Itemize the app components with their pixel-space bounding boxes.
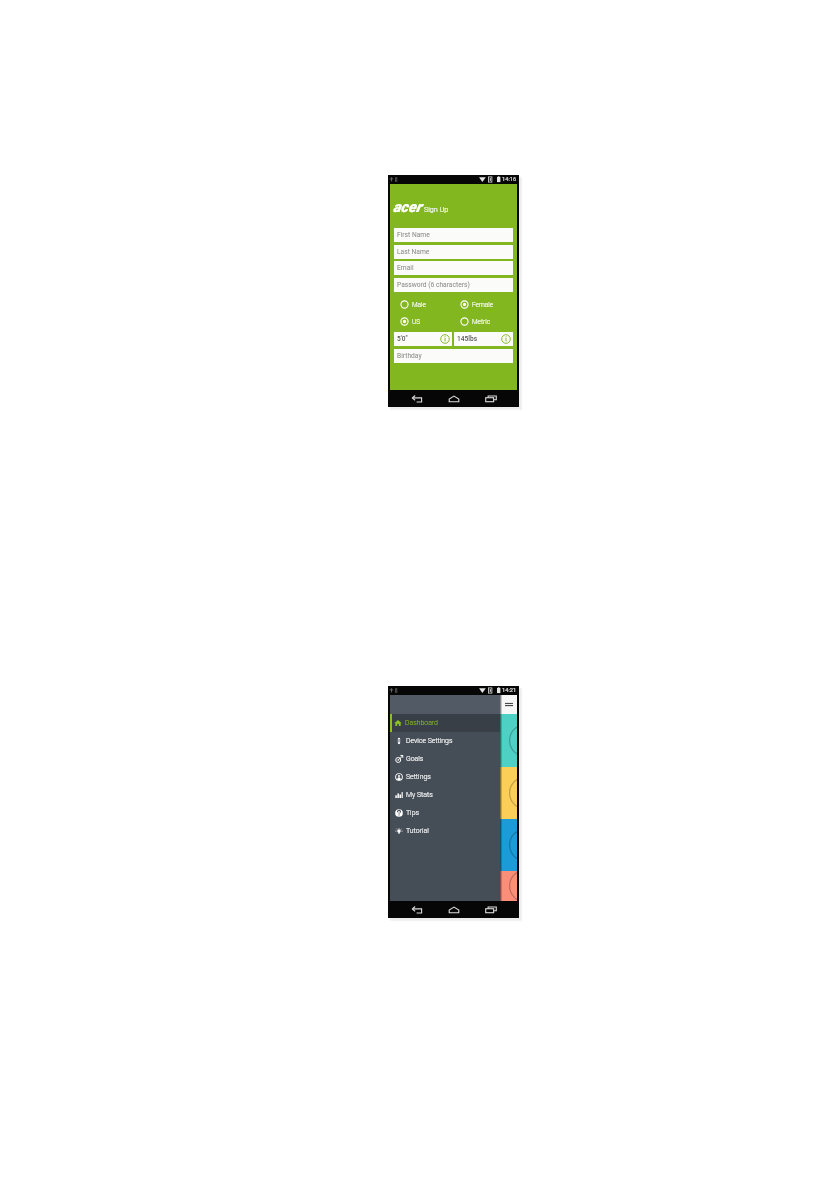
staticText: Birthday — [397, 352, 422, 360]
staticText: 5'0" — [397, 335, 408, 343]
button[interactable]: 5'0" — [394, 332, 452, 346]
staticText: Male — [412, 301, 426, 309]
button[interactable]: My Stats — [390, 786, 500, 804]
staticText: Metric — [472, 318, 491, 326]
button[interactable]: Birthday — [394, 349, 513, 363]
button[interactable]: Metric — [460, 316, 491, 327]
staticText: Tips — [406, 809, 419, 817]
button[interactable]: First Name — [394, 228, 513, 242]
staticText: 14:16 — [502, 176, 517, 183]
button[interactable]: Recent apps — [483, 390, 498, 407]
staticText: First Name — [397, 231, 430, 239]
button[interactable]: Last Name — [394, 245, 513, 259]
button[interactable]: Back — [410, 390, 425, 407]
button[interactable]: Email — [394, 261, 513, 275]
button[interactable]: Open navigation drawer — [500, 695, 517, 714]
button[interactable]: Tips — [390, 804, 500, 822]
button[interactable] — [500, 767, 517, 819]
button[interactable]: Settings — [390, 768, 500, 786]
staticText: Goals — [406, 755, 424, 763]
button[interactable]: Back — [410, 901, 425, 918]
button[interactable]: Goals — [390, 750, 500, 768]
button[interactable]: Male — [400, 299, 426, 310]
button[interactable] — [500, 819, 517, 871]
button[interactable]: Dashboard — [390, 714, 500, 732]
button[interactable]: Password (6 characters) — [394, 278, 513, 292]
staticText: 14:21 — [502, 687, 517, 694]
button[interactable]: Tutorial — [390, 822, 500, 840]
button[interactable] — [500, 714, 517, 767]
staticText: Device Settings — [406, 737, 453, 745]
staticText: US — [412, 318, 421, 326]
staticText: Dashboard — [405, 719, 438, 727]
staticText: 145lbs — [457, 335, 478, 343]
button[interactable]: Home — [446, 390, 461, 407]
button[interactable] — [500, 871, 517, 901]
staticText: Email — [397, 264, 414, 272]
staticText: Tutorial — [406, 827, 429, 835]
staticText: My Stats — [406, 791, 433, 799]
staticText: Settings — [406, 773, 431, 781]
button[interactable]: 145lbs — [454, 332, 513, 346]
button[interactable]: Recent apps — [483, 901, 498, 918]
staticText: Sign Up — [424, 205, 449, 213]
staticText: Password (6 characters) — [397, 281, 470, 289]
staticText: Last Name — [397, 248, 430, 256]
button[interactable]: Female — [460, 299, 494, 310]
button[interactable]: Device Settings — [390, 732, 500, 750]
button[interactable]: Home — [446, 901, 461, 918]
staticText: acer — [393, 198, 422, 215]
staticText: Female — [472, 301, 494, 309]
button[interactable]: US — [400, 316, 421, 327]
